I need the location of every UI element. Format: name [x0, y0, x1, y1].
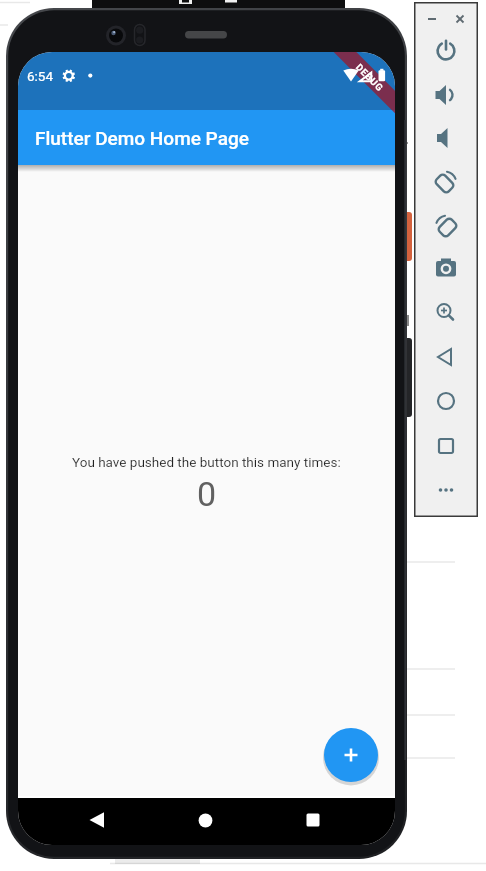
button[interactable]: Flutter Demo Home Page [18, 110, 395, 165]
button[interactable] [423, 10, 441, 28]
button[interactable] [424, 291, 468, 335]
button[interactable] [298, 805, 328, 835]
button[interactable] [190, 805, 220, 835]
button[interactable] [424, 29, 468, 73]
button[interactable] [81, 805, 111, 835]
button[interactable] [424, 116, 468, 160]
button[interactable] [451, 10, 469, 28]
button[interactable] [424, 204, 468, 248]
staticText: You have pushed the button this many tim… [72, 454, 341, 470]
staticText: 6:54 [27, 68, 54, 84]
staticText: Flutter Demo Home Page [35, 127, 249, 149]
staticText: 0 [197, 474, 217, 514]
button[interactable] [424, 247, 468, 291]
button[interactable] [424, 379, 468, 423]
button[interactable] [424, 160, 468, 204]
staticText: DEBUG [354, 61, 386, 94]
button[interactable] [424, 468, 468, 512]
button[interactable] [424, 73, 468, 117]
button[interactable] [424, 335, 468, 379]
button[interactable] [424, 424, 468, 468]
button[interactable] [324, 728, 378, 782]
